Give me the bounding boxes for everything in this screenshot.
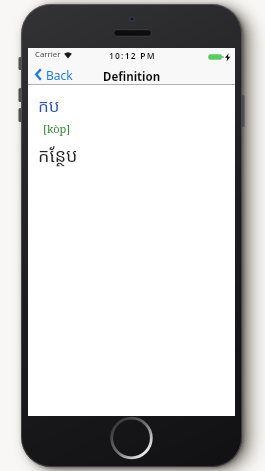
staticText: កប bbox=[38, 94, 60, 117]
staticText: 10:12 PM bbox=[109, 50, 156, 62]
button[interactable]: Back bbox=[33, 66, 76, 83]
staticText: Carrier bbox=[35, 49, 61, 60]
button[interactable] bbox=[112, 418, 152, 458]
staticText: [kòp] bbox=[43, 121, 71, 136]
staticText: Definition bbox=[103, 69, 161, 85]
staticText: កន្ថែប bbox=[38, 143, 78, 168]
staticText: Back bbox=[46, 67, 73, 83]
